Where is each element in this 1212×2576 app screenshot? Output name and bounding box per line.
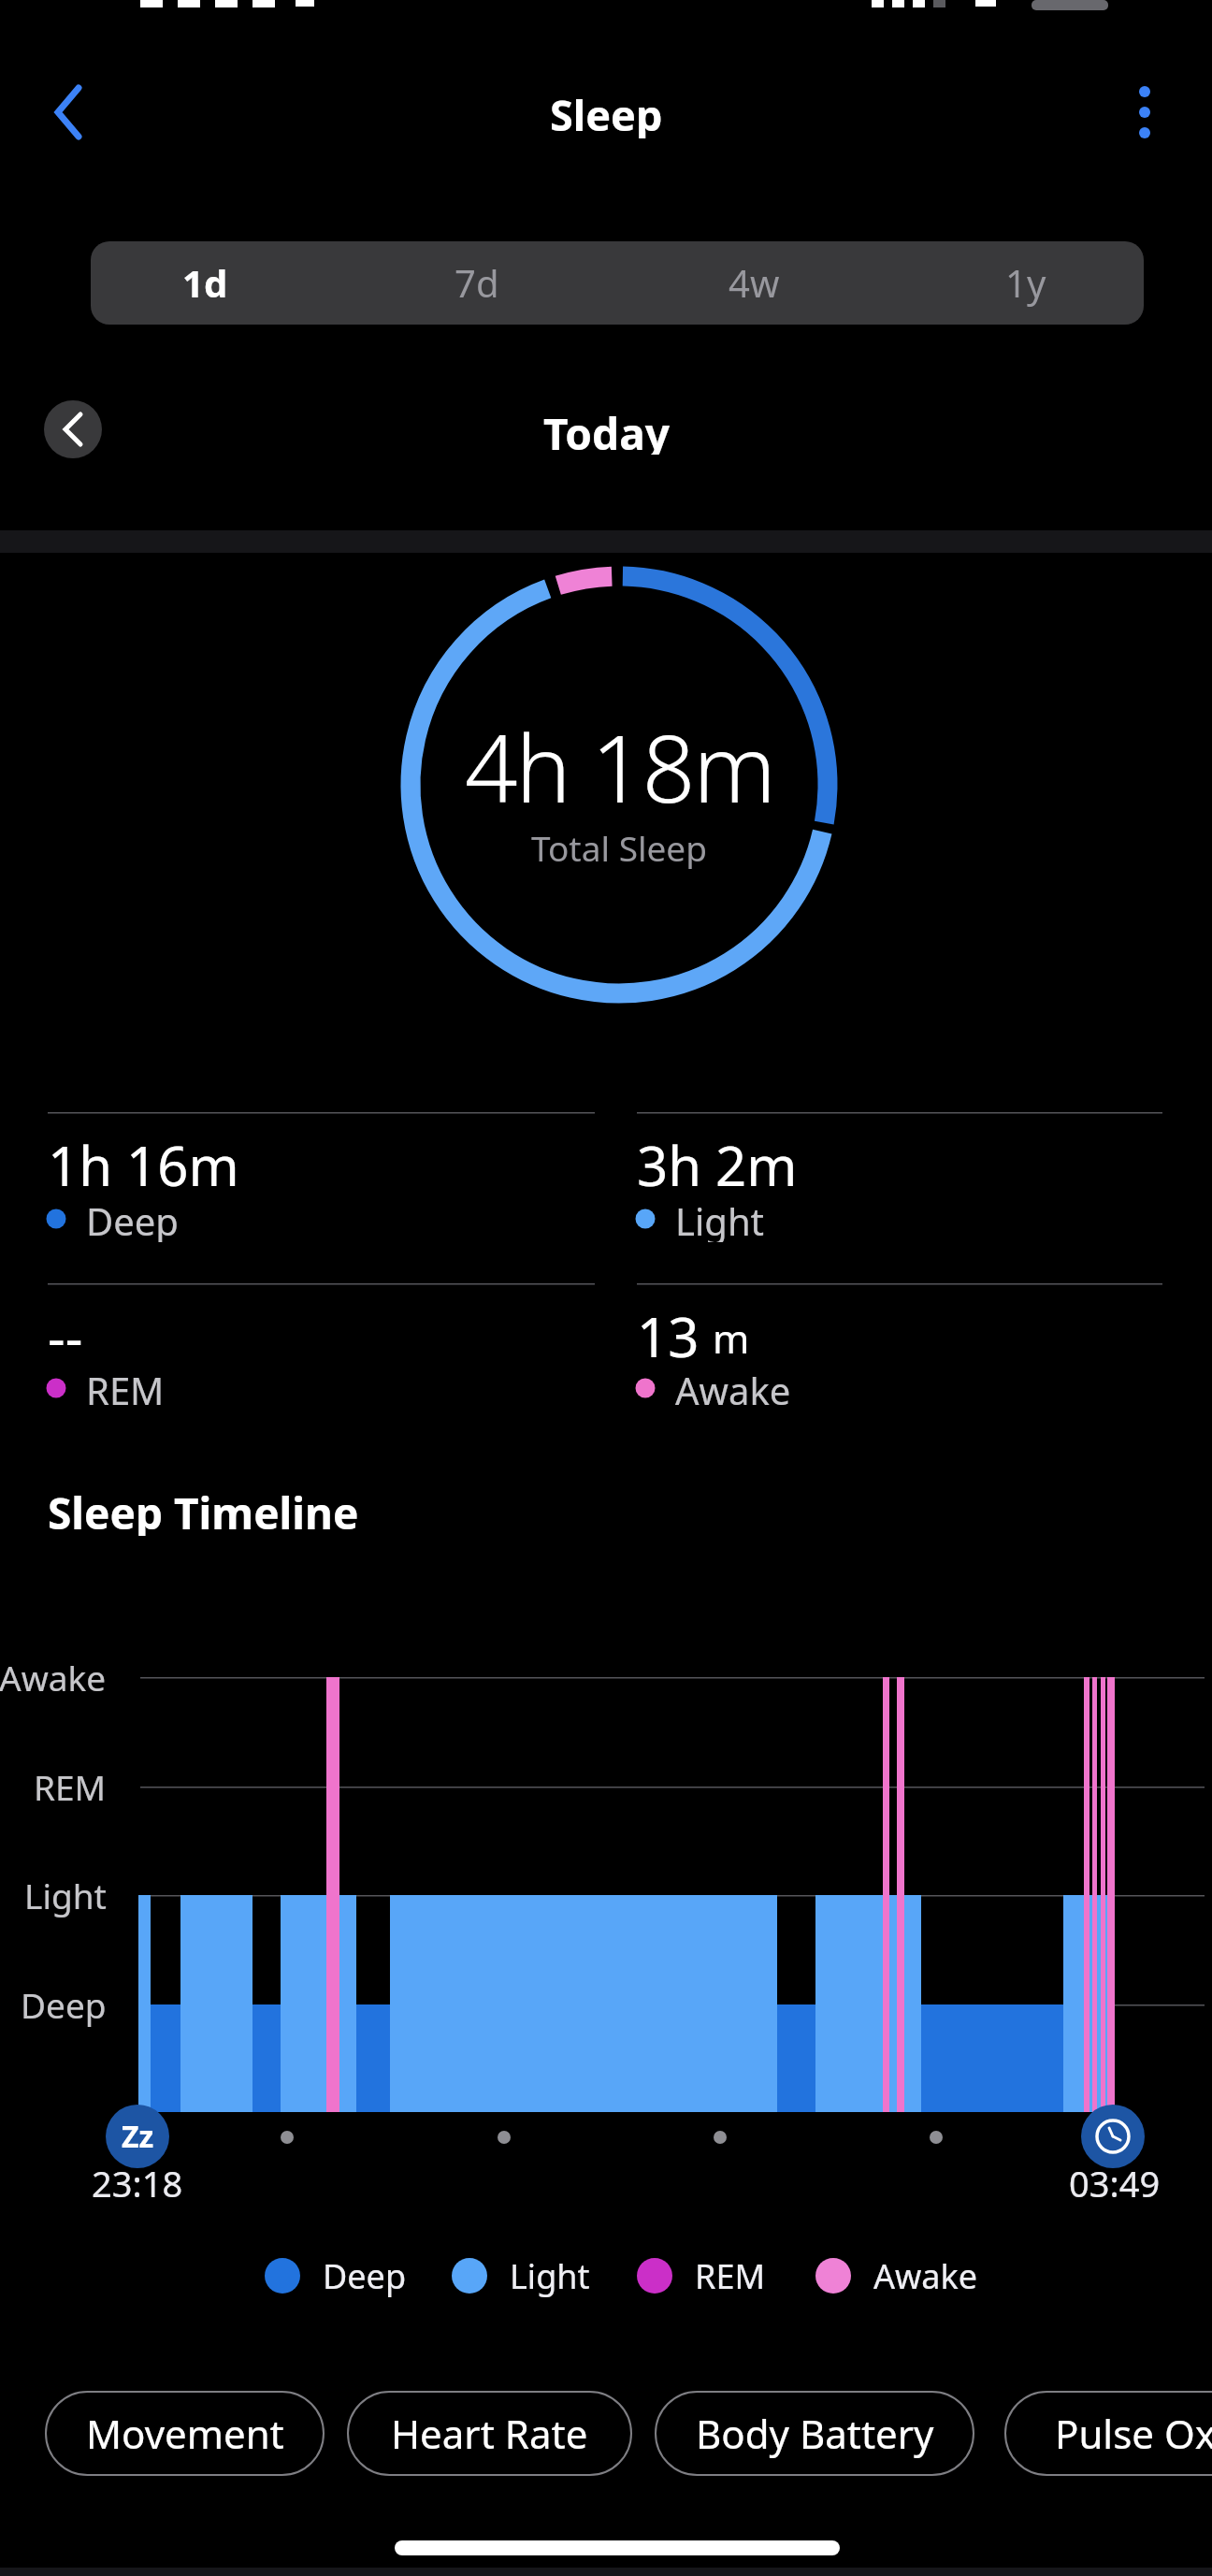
- button[interactable]: [617, 241, 881, 325]
- staticText: Zz: [122, 2116, 154, 2157]
- staticText: Pulse Ox: [1055, 2407, 1212, 2460]
- staticText: Awake: [675, 1365, 791, 1411]
- staticText: REM: [34, 1763, 107, 1810]
- button[interactable]: Body Battery: [655, 2391, 974, 2476]
- staticText: Heart Rate: [391, 2407, 588, 2460]
- staticText: 13: [637, 1299, 700, 1365]
- staticText: m: [713, 1311, 750, 1365]
- staticText: Body Battery: [696, 2407, 934, 2460]
- button[interactable]: [91, 241, 354, 325]
- staticText: REM: [695, 2253, 766, 2299]
- button[interactable]: [1107, 75, 1182, 150]
- staticText: 1d: [182, 257, 228, 308]
- staticText: Total Sleep: [531, 824, 707, 869]
- button[interactable]: [354, 241, 618, 325]
- staticText: REM: [86, 1365, 165, 1411]
- button[interactable]: [881, 241, 1145, 325]
- staticText: Sleep: [550, 86, 663, 138]
- button[interactable]: Movement: [45, 2391, 325, 2476]
- staticText: 03:49: [1069, 2159, 1161, 2204]
- button[interactable]: [37, 75, 112, 150]
- staticText: Movement: [86, 2407, 284, 2460]
- staticText: Light: [675, 1195, 765, 1242]
- staticText: 1h 16m: [48, 1128, 239, 1194]
- staticText: Awake: [873, 2253, 978, 2299]
- button[interactable]: [44, 400, 102, 458]
- button[interactable]: Heart Rate: [347, 2391, 632, 2476]
- button[interactable]: Pulse Ox: [1004, 2391, 1212, 2476]
- staticText: Deep: [86, 1195, 179, 1242]
- staticText: 1y: [1005, 257, 1046, 308]
- staticText: Deep: [323, 2253, 407, 2299]
- staticText: Light: [24, 1872, 107, 1918]
- staticText: Today: [543, 404, 670, 455]
- staticText: 3h 2m: [637, 1128, 798, 1194]
- staticText: 4h 18m: [465, 703, 774, 819]
- staticText: Light: [510, 2253, 590, 2299]
- staticText: 4w: [729, 257, 780, 308]
- staticText: 7d: [454, 257, 499, 308]
- staticText: Awake: [0, 1654, 107, 1700]
- staticText: --: [48, 1299, 83, 1365]
- staticText: Sleep Timeline: [48, 1483, 359, 1536]
- staticText: Deep: [21, 1981, 107, 2028]
- staticText: 23:18: [92, 2159, 183, 2204]
